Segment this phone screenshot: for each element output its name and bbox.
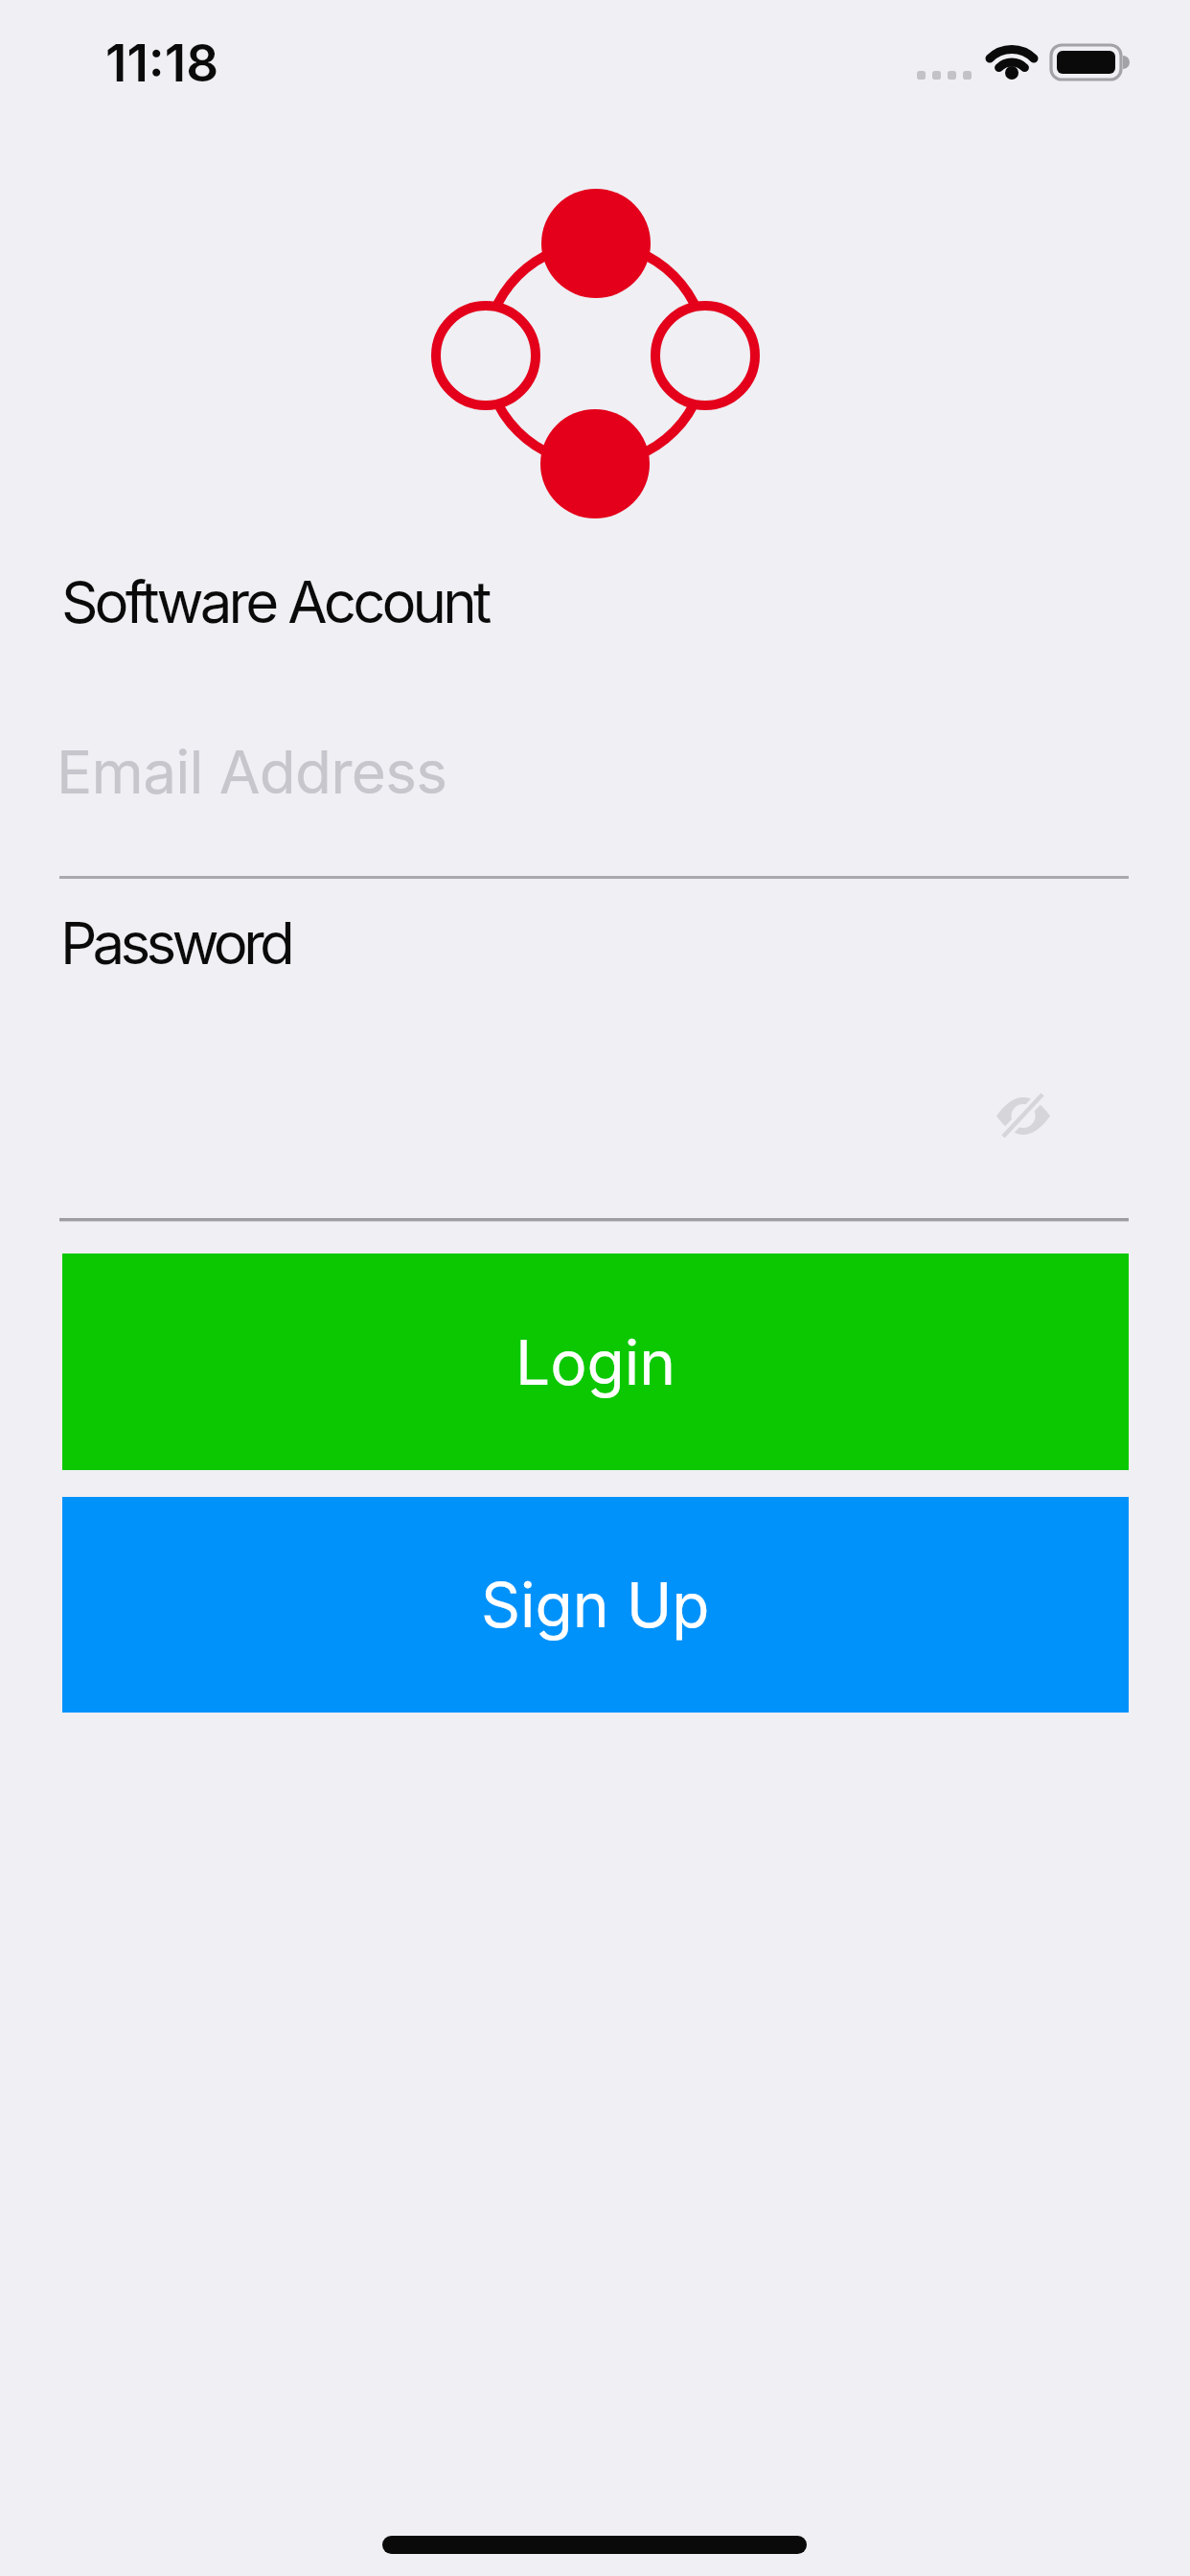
staticText: Email Address bbox=[57, 736, 447, 808]
staticText: Software Account bbox=[61, 567, 489, 637]
staticText: Password bbox=[60, 908, 291, 978]
staticText: Sign Up bbox=[481, 1568, 710, 1642]
button[interactable] bbox=[991, 1087, 1056, 1144]
staticText: 11:18 bbox=[105, 33, 219, 94]
staticText: Login bbox=[515, 1325, 676, 1399]
button[interactable] bbox=[59, 711, 1129, 876]
button[interactable]: Login bbox=[62, 1253, 1129, 1470]
button[interactable]: Sign Up bbox=[62, 1497, 1129, 1713]
